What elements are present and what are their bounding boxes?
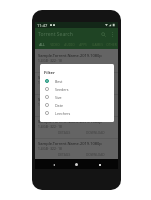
staticText: GAMES bbox=[92, 43, 103, 47]
button[interactable]: Seeders bbox=[40, 85, 114, 93]
button[interactable]: APPS bbox=[76, 41, 90, 49]
staticText: 1.4 GB · 322 · 18 bbox=[38, 147, 62, 151]
staticText: 1.4 GB · 322 · 18 bbox=[38, 59, 62, 63]
staticText: Date bbox=[55, 103, 63, 108]
button[interactable]: Search bbox=[99, 30, 108, 39]
button[interactable]: Back bbox=[49, 160, 58, 169]
button[interactable]: Sample.Torrent.Name.2019.1080p bbox=[35, 95, 118, 117]
button[interactable]: Recents bbox=[95, 160, 104, 169]
button[interactable]: More options bbox=[108, 30, 117, 39]
staticText: Sample.Torrent.Name.2019.1080p bbox=[38, 141, 102, 146]
staticText: Size bbox=[55, 95, 62, 100]
button[interactable]: Sample.Torrent.Name.2019.1080p bbox=[35, 139, 118, 159]
button[interactable]: Best bbox=[40, 77, 114, 85]
staticText: VIDEO bbox=[50, 43, 60, 47]
button[interactable]: OTHER bbox=[104, 41, 118, 49]
staticText: DETAILS bbox=[58, 153, 71, 157]
staticText: Sample.Torrent.Name.2019.1080p bbox=[38, 97, 102, 102]
staticText: DETAILS bbox=[58, 109, 71, 113]
staticText: Best bbox=[55, 79, 63, 84]
staticText: ALL bbox=[39, 43, 45, 47]
staticText: Torrent Search bbox=[38, 31, 73, 38]
staticText: Sample.Torrent.Name.2019.1080p bbox=[38, 53, 102, 58]
button[interactable]: Date bbox=[40, 101, 114, 109]
staticText: DOWNLOAD bbox=[86, 131, 105, 135]
staticText: AUDIO bbox=[64, 43, 75, 47]
button[interactable]: Home bbox=[72, 160, 81, 169]
staticText: 1.4 GB · 322 · 18 bbox=[38, 125, 62, 129]
button[interactable]: Sample.Torrent.Name.2019.1080p bbox=[35, 73, 118, 95]
staticText: DETAILS bbox=[58, 131, 71, 135]
staticText: APPS bbox=[79, 43, 87, 47]
staticText: Filter bbox=[44, 70, 55, 76]
button[interactable]: ALL bbox=[35, 41, 48, 49]
staticText: Sample.Torrent.Name.2019.1080p bbox=[38, 119, 102, 124]
staticText: OTHER bbox=[106, 43, 117, 47]
button[interactable]: Sample.Torrent.Name.2019.1080p bbox=[35, 117, 118, 139]
staticText: DETAILS bbox=[58, 87, 71, 91]
button[interactable]: Size bbox=[40, 93, 114, 101]
staticText: Sample.Torrent.Name.2019.1080p bbox=[38, 75, 102, 80]
button[interactable]: Sample.Torrent.Name.2019.1080p bbox=[35, 51, 118, 73]
staticText: DOWNLOAD bbox=[86, 153, 105, 157]
button[interactable]: GAMES bbox=[90, 41, 104, 49]
staticText: 1.4 GB · 322 · 18 bbox=[38, 103, 62, 107]
button[interactable]: VIDEO bbox=[48, 41, 62, 49]
button[interactable]: AUDIO bbox=[62, 41, 76, 49]
staticText: Seeders bbox=[55, 87, 69, 92]
staticText: 1.4 GB · 322 · 18 bbox=[38, 81, 62, 85]
staticText: Leechers bbox=[55, 111, 71, 116]
button[interactable]: Leechers bbox=[40, 109, 114, 117]
staticText: 11:47 bbox=[37, 23, 48, 28]
